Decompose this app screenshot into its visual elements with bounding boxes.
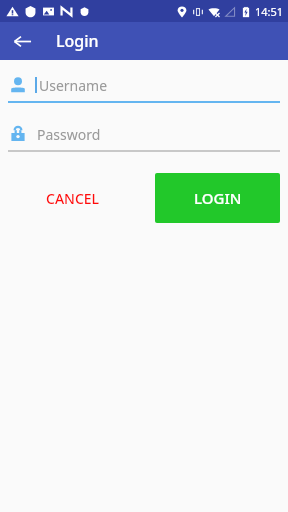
- staticText: CANCEL: [46, 189, 100, 208]
- button[interactable]: Username: [8, 72, 280, 98]
- staticText: Username: [39, 76, 108, 95]
- button[interactable]: CANCEL: [34, 181, 112, 216]
- button[interactable]: LOGIN: [155, 173, 280, 223]
- staticText: Password: [37, 125, 101, 144]
- button[interactable]: Password: [8, 121, 280, 147]
- button[interactable]: Back: [6, 25, 38, 57]
- staticText: Login: [56, 30, 99, 52]
- staticText: LOGIN: [194, 188, 242, 208]
- staticText: 14:51: [255, 4, 284, 19]
